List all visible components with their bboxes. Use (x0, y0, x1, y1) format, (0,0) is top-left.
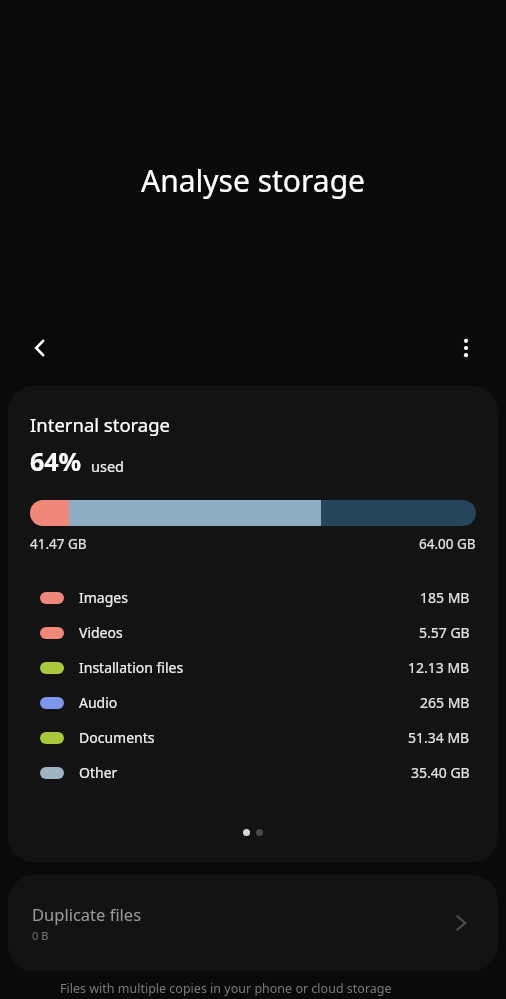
staticText: Installation files (79, 658, 184, 677)
button[interactable]: Installation files (8, 650, 498, 685)
staticText: Images (79, 588, 128, 607)
button[interactable]: Images (8, 580, 498, 615)
staticText: 12.13 MB (408, 658, 470, 677)
staticText: 185 MB (420, 588, 470, 607)
staticText: 0 B (32, 928, 49, 943)
staticText: 51.34 MB (408, 728, 470, 747)
button[interactable]: Duplicate files (8, 875, 498, 971)
staticText: 41.47 GB (30, 535, 87, 553)
staticText: Analyse storage (0, 160, 506, 201)
staticText: Other (79, 763, 118, 782)
staticText: used (91, 456, 125, 476)
staticText: 5.57 GB (419, 623, 470, 642)
button[interactable]: Other (8, 755, 498, 790)
button[interactable]: Back (16, 324, 64, 372)
button[interactable]: Internal storage (8, 386, 498, 862)
staticText: Audio (79, 693, 118, 712)
staticText: Internal storage (30, 412, 171, 437)
button[interactable]: Videos (8, 615, 498, 650)
staticText: Files with multiple copies in your phone… (60, 980, 392, 997)
staticText: Duplicate files (32, 903, 142, 925)
button[interactable]: More options (444, 326, 488, 370)
staticText: Documents (79, 728, 155, 747)
staticText: 64.00 GB (419, 535, 476, 553)
staticText: Videos (79, 623, 123, 642)
button[interactable]: Audio (8, 685, 498, 720)
staticText: 265 MB (420, 693, 470, 712)
staticText: 35.40 GB (411, 763, 470, 782)
button[interactable]: Documents (8, 720, 498, 755)
staticText: 64% (30, 444, 82, 478)
